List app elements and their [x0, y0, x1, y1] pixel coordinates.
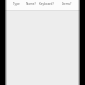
staticText: Name? [26, 2, 36, 6]
button[interactable]: Keyboard? [39, 2, 54, 6]
staticText: Type [13, 2, 20, 6]
button[interactable]: Type [13, 2, 20, 6]
staticText: Items? [62, 2, 72, 6]
staticText: Keyboard? [39, 2, 54, 6]
button[interactable]: Name? [26, 2, 36, 6]
button[interactable]: Items? [62, 2, 72, 6]
